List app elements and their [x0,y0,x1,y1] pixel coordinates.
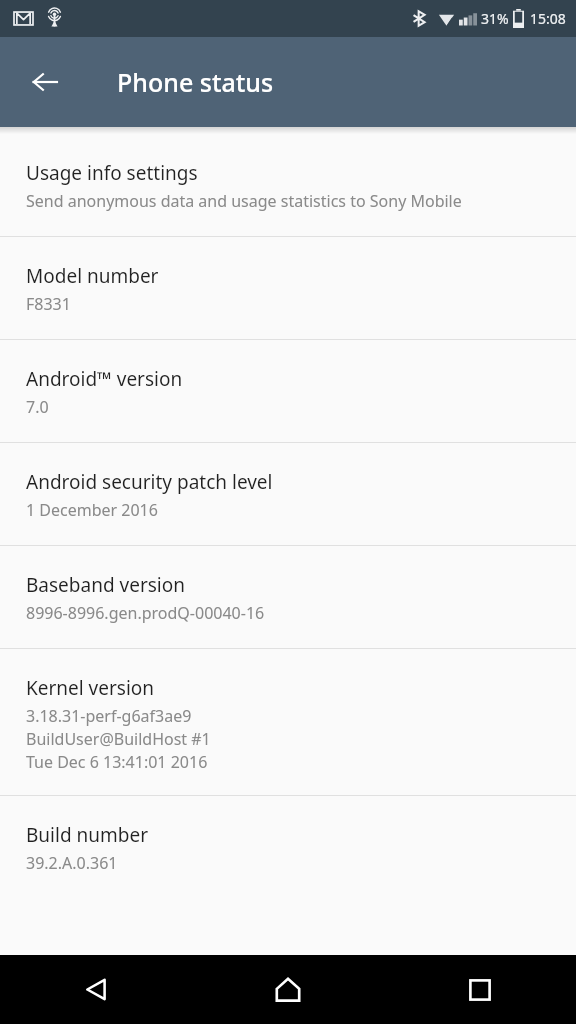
button[interactable]: Back [0,955,192,1024]
staticText: 39.2.A.0.361 [26,852,118,874]
staticText: Baseband version [26,572,185,598]
staticText: F8331 [26,293,71,315]
staticText: 8996-8996.gen.prodQ-00040-16 [26,602,265,624]
button[interactable]: Back [21,58,69,106]
staticText: Tue Dec 6 13:41:01 2016 [26,751,208,773]
staticText: 1 December 2016 [26,499,158,521]
button[interactable]: Android security patch level [0,443,576,545]
button[interactable]: Baseband version [0,546,576,648]
button[interactable]: Home [192,955,384,1024]
staticText: Send anonymous data and usage statistics… [26,190,462,212]
staticText: Model number [26,263,159,289]
staticText: Android™ version [26,366,183,392]
staticText: 7.0 [26,396,49,418]
staticText: 3.18.31-perf-g6af3ae9 [26,705,192,727]
staticText: Usage info settings [26,160,198,186]
staticText: 31% [481,9,509,28]
staticText: Kernel version [26,675,155,701]
staticText: 15:08 [530,9,566,28]
button[interactable]: Build number [0,796,576,898]
staticText: Build number [26,822,149,848]
button[interactable]: Android™ version [0,340,576,442]
staticText: Phone status [117,65,274,99]
button[interactable]: Recents [384,955,576,1024]
button[interactable]: Usage info settings [0,134,576,236]
staticText: BuildUser@BuildHost #1 [26,728,211,750]
staticText: Android security patch level [26,469,273,495]
button[interactable]: Kernel version [0,649,576,795]
button[interactable]: Model number [0,237,576,339]
